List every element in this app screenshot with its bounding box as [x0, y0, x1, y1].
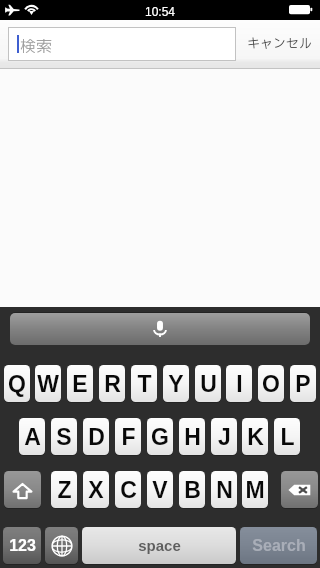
button[interactable]: M: [242, 471, 268, 508]
staticText: E: [72, 371, 88, 397]
button[interactable]: Q: [4, 365, 30, 402]
button[interactable]: I: [226, 365, 252, 402]
staticText: N: [216, 477, 233, 503]
button[interactable]: space: [82, 527, 236, 564]
staticText: Q: [8, 371, 26, 397]
button[interactable]: 123: [3, 527, 41, 564]
button[interactable]: J: [211, 418, 237, 455]
button[interactable]: F: [115, 418, 141, 455]
button[interactable]: L: [274, 418, 300, 455]
button[interactable]: キャンセル: [243, 28, 315, 59]
staticText: F: [121, 424, 136, 450]
button[interactable]: C: [115, 471, 141, 508]
button[interactable]: K: [242, 418, 268, 455]
staticText: 10:54: [145, 5, 176, 18]
button[interactable]: Z: [51, 471, 77, 508]
button[interactable]: R: [99, 365, 125, 402]
button[interactable]: N: [211, 471, 237, 508]
button[interactable]: 検索: [9, 28, 235, 60]
button[interactable]: Change keyboard: [45, 527, 78, 564]
staticText: M: [245, 477, 265, 503]
button[interactable]: X: [83, 471, 109, 508]
staticText: Y: [168, 371, 184, 397]
button[interactable]: O: [258, 365, 284, 402]
staticText: O: [262, 371, 280, 397]
staticText: A: [24, 424, 41, 450]
button[interactable]: V: [147, 471, 173, 508]
button[interactable]: Backspace: [281, 471, 318, 508]
staticText: R: [104, 371, 121, 397]
staticText: Search: [252, 537, 306, 555]
staticText: I: [236, 371, 243, 397]
button[interactable]: G: [147, 418, 173, 455]
staticText: space: [138, 537, 181, 554]
staticText: S: [56, 424, 72, 450]
staticText: Z: [57, 477, 72, 503]
staticText: 123: [9, 537, 36, 555]
staticText: H: [184, 424, 201, 450]
button[interactable]: D: [83, 418, 109, 455]
staticText: C: [120, 477, 137, 503]
button[interactable]: Y: [163, 365, 189, 402]
button[interactable]: H: [179, 418, 205, 455]
button[interactable]: T: [131, 365, 157, 402]
button[interactable]: Shift: [4, 471, 41, 508]
staticText: X: [88, 477, 104, 503]
staticText: V: [152, 477, 168, 503]
button[interactable]: E: [67, 365, 93, 402]
staticText: G: [151, 424, 169, 450]
staticText: キャンセル: [247, 34, 312, 53]
button[interactable]: Dictation: [10, 313, 310, 345]
staticText: D: [88, 424, 105, 450]
staticText: 検索: [20, 35, 53, 59]
staticText: T: [137, 371, 152, 397]
button[interactable]: S: [51, 418, 77, 455]
button[interactable]: Search: [240, 527, 317, 564]
staticText: U: [200, 371, 217, 397]
button[interactable]: P: [290, 365, 316, 402]
button[interactable]: U: [195, 365, 221, 402]
staticText: J: [218, 424, 231, 450]
button[interactable]: W: [35, 365, 61, 402]
staticText: P: [295, 371, 311, 397]
staticText: B: [184, 477, 201, 503]
button[interactable]: B: [179, 471, 205, 508]
button[interactable]: A: [19, 418, 45, 455]
staticText: L: [280, 424, 295, 450]
staticText: K: [247, 424, 264, 450]
staticText: W: [37, 371, 59, 397]
